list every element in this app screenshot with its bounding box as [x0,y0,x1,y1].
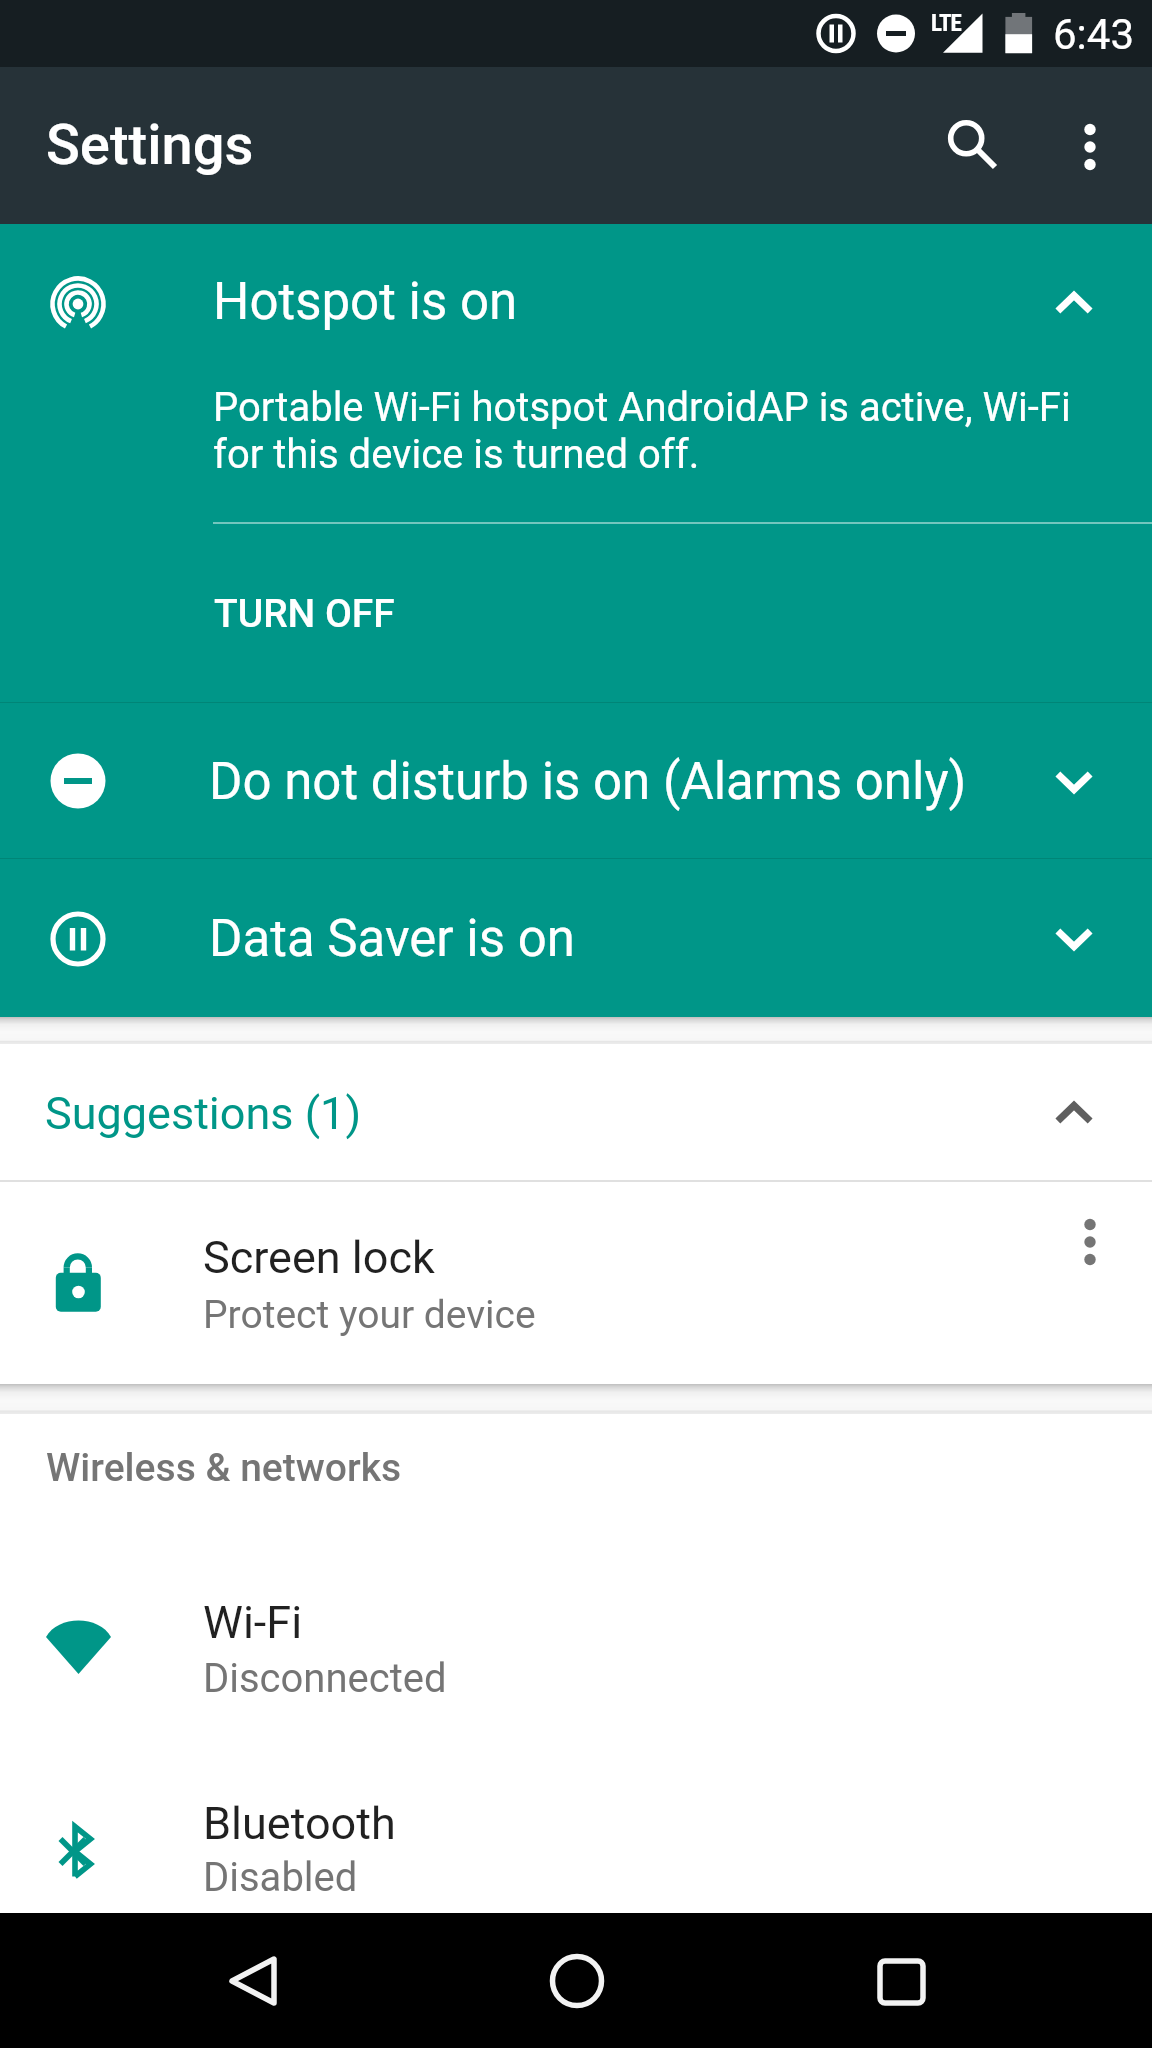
staticText: Wi-Fi [203,1596,303,1649]
button[interactable]: Hotspot is on [0,224,1152,702]
staticText: Settings [46,112,254,178]
button[interactable]: TURN OFF [180,566,430,686]
staticText: Screen lock [203,1231,435,1284]
button[interactable]: Screen lock [0,1182,1152,1384]
staticText: Suggestions (1) [45,1087,362,1140]
staticText: Do not disturb is on (Alarms only) [209,752,967,812]
button[interactable]: Expand do not disturb [1026,735,1122,831]
button[interactable]: Recent apps [852,1933,948,2029]
button[interactable]: More options [1042,101,1138,197]
button[interactable]: Do not disturb is on (Alarms only) [0,703,1152,858]
button[interactable]: Bluetooth [0,1718,1152,1913]
button[interactable]: Search [917,100,1013,196]
button[interactable]: Suggestions (1) [0,1044,1152,1180]
staticText: Data Saver is on [209,909,575,969]
button[interactable]: Expand data saver [1026,892,1122,988]
button[interactable]: Collapse suggestions [1026,1064,1122,1160]
staticText: Portable Wi-Fi hotspot AndroidAP is acti… [213,384,1078,478]
staticText: Protect your device [203,1292,536,1338]
button[interactable]: Data Saver is on [0,859,1152,1017]
staticText: Wireless & networks [46,1445,402,1491]
staticText: Disconnected [203,1655,447,1702]
staticText: TURN OFF [214,591,395,637]
staticText: 6:43 [1053,10,1134,59]
button[interactable]: Back [205,1933,301,2029]
button[interactable]: Screen lock options [1042,1196,1138,1292]
staticText: Hotspot is on [213,272,518,332]
staticText: Bluetooth [203,1797,396,1850]
staticText: LTE [931,10,962,37]
staticText: Disabled [203,1854,358,1901]
button[interactable]: Wi-Fi [0,1520,1152,1718]
button[interactable]: Home [529,1933,625,2029]
button[interactable]: Collapse hotspot [1026,254,1122,350]
